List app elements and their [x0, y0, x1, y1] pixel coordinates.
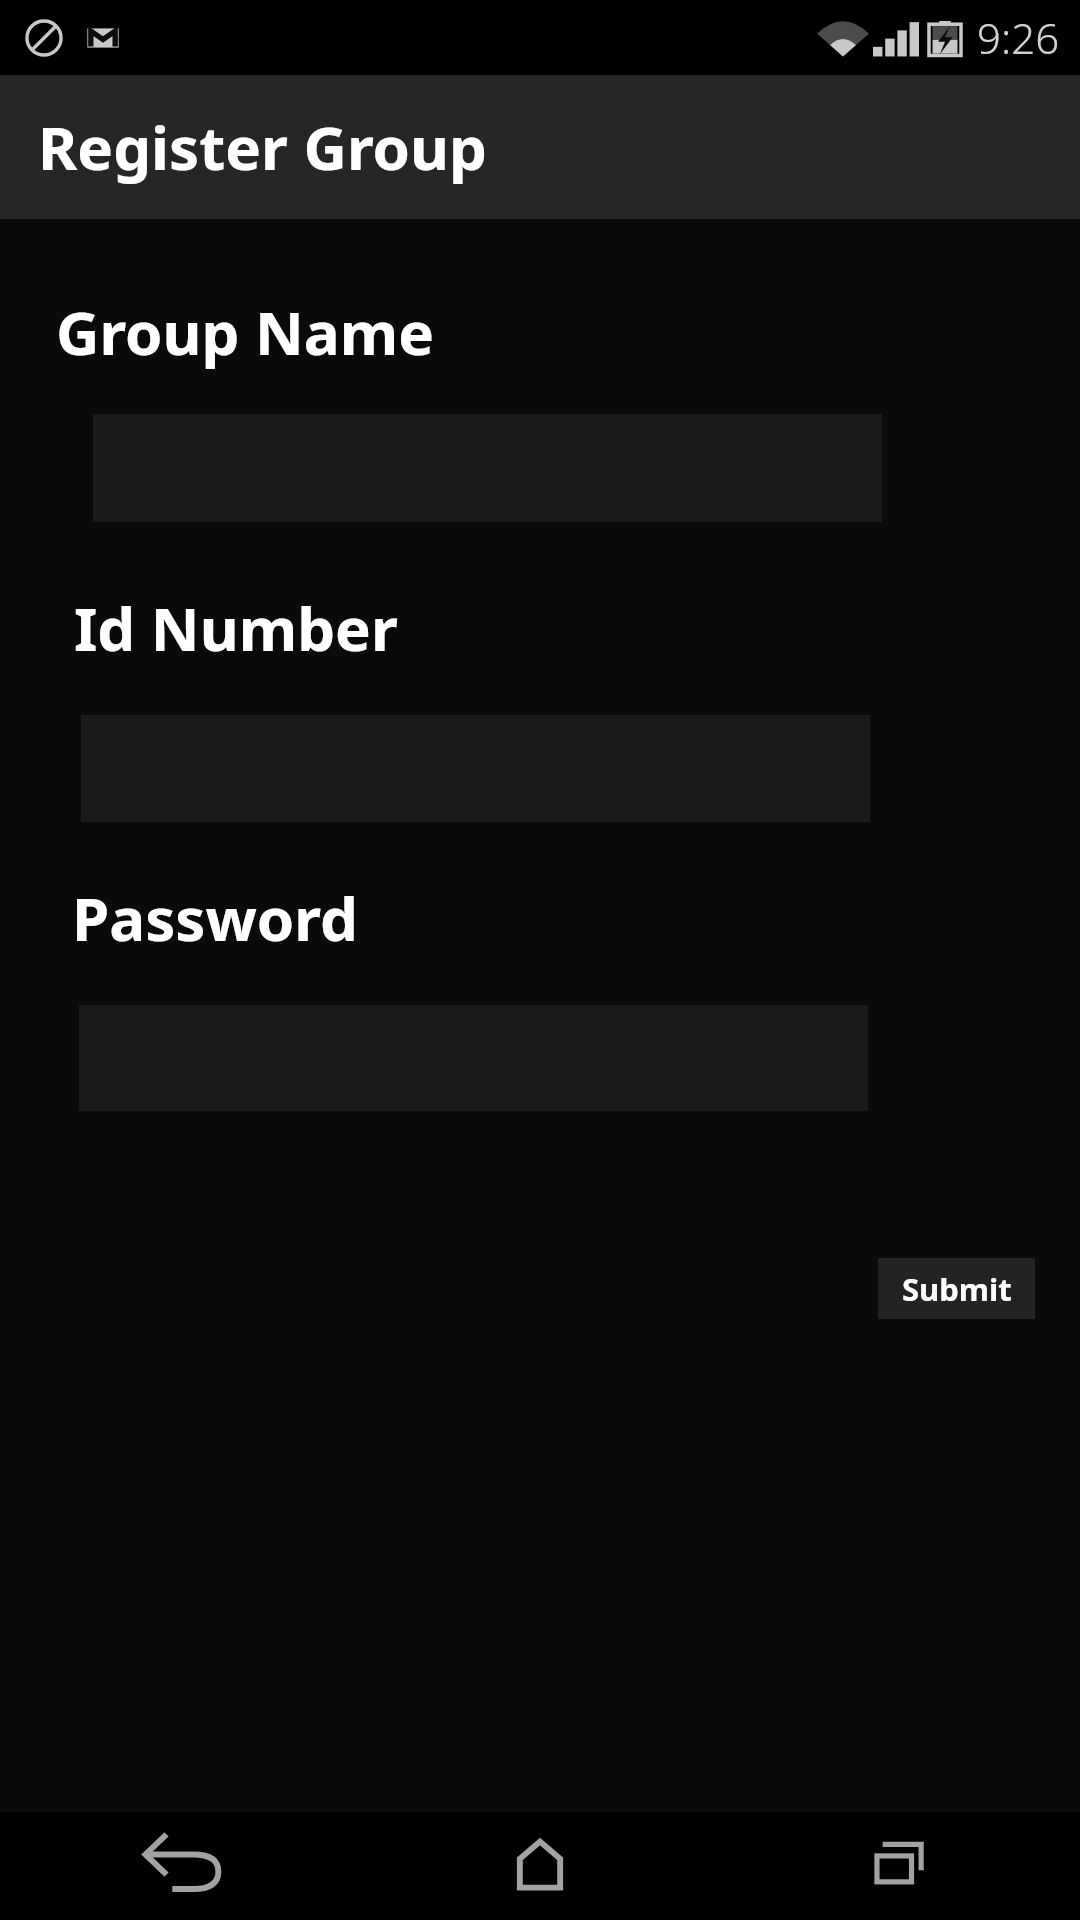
- button[interactable]: Home: [360, 1812, 720, 1920]
- staticText: 9:26: [977, 9, 1060, 66]
- button[interactable]: Submit: [878, 1258, 1035, 1319]
- button[interactable]: Recent apps: [720, 1812, 1080, 1920]
- staticText: Password: [72, 877, 358, 959]
- button[interactable]: Back: [0, 1812, 360, 1920]
- staticText: Group Name: [56, 291, 435, 373]
- staticText: Register Group: [38, 106, 487, 188]
- staticText: Submit: [902, 1268, 1012, 1310]
- staticText: Id Number: [74, 587, 398, 669]
